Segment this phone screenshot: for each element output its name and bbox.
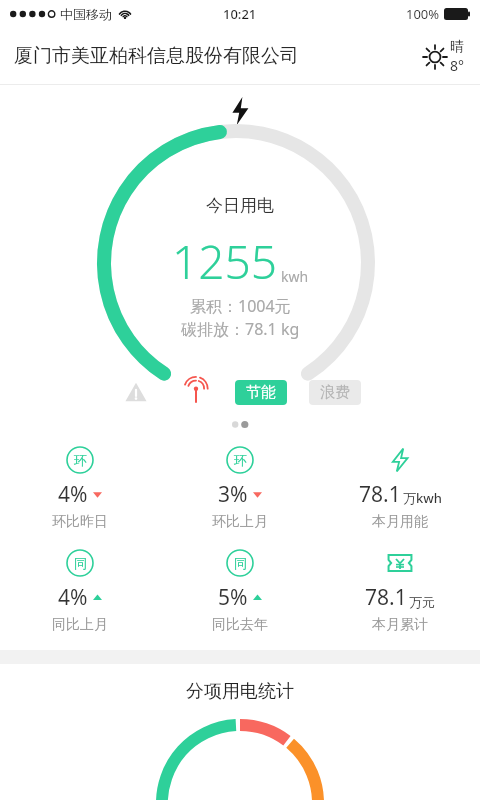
button[interactable]: 78.1 <box>320 547 480 636</box>
staticText: 4% <box>58 480 88 509</box>
staticText: 累积：1004元 <box>190 295 291 317</box>
staticText: 8° <box>450 56 464 75</box>
button[interactable]: 浪费 <box>309 380 361 405</box>
staticText: 同 <box>74 555 87 571</box>
staticText: 晴 <box>450 38 464 56</box>
button[interactable]: 环 <box>160 444 320 533</box>
button[interactable]: Warning <box>119 375 153 409</box>
other: Weather <box>422 44 448 70</box>
staticText: 环比昨日 <box>52 513 108 531</box>
staticText: 今日用电 <box>206 195 274 216</box>
staticText: 本月用能 <box>372 513 428 531</box>
staticText: kwh <box>281 267 309 286</box>
button[interactable]: 环 <box>0 444 160 533</box>
staticText: 万kwh <box>403 489 442 507</box>
staticText: 厦门市美亚柏科信息股份有限公司 <box>14 44 420 68</box>
button[interactable]: 节能 <box>235 380 287 405</box>
staticText: 环 <box>74 452 87 468</box>
staticText: 78.1 <box>365 583 407 612</box>
staticText: 1255 <box>172 230 278 293</box>
staticText: 环 <box>234 452 247 468</box>
button[interactable]: Weather <box>420 38 466 75</box>
staticText: 浪费 <box>320 383 350 402</box>
button[interactable]: 78.1 <box>320 444 480 533</box>
staticText: 万元 <box>409 594 435 610</box>
button[interactable]: 同 <box>160 547 320 636</box>
staticText: 本月累计 <box>372 616 428 634</box>
staticText: 10:21 <box>223 5 257 23</box>
staticText: 78.1 <box>359 480 401 509</box>
staticText: 100% <box>406 5 440 23</box>
staticText: 同 <box>234 555 247 571</box>
staticText: 同比上月 <box>52 616 108 634</box>
button[interactable]: 同 <box>0 547 160 636</box>
staticText: 环比上月 <box>212 513 268 531</box>
staticText: 5% <box>218 583 248 612</box>
staticText: 中国移动 <box>60 6 112 22</box>
staticText: 节能 <box>246 383 276 402</box>
staticText: 分项用电统计 <box>0 680 480 703</box>
button[interactable]: Signal <box>179 375 213 409</box>
staticText: 3% <box>218 480 248 509</box>
staticText: 同比去年 <box>212 616 268 634</box>
staticText: 4% <box>58 583 88 612</box>
staticText: 碳排放：78.1 kg <box>181 318 300 340</box>
